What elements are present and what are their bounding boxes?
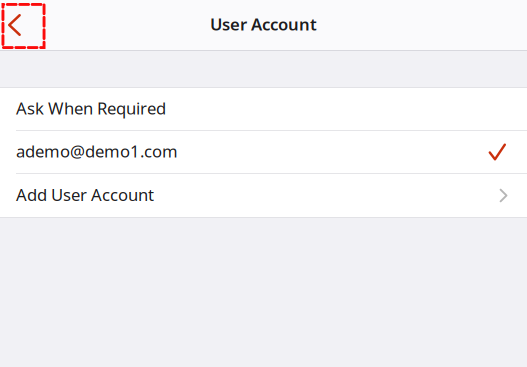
- button[interactable]: ademo@demo1.com: [0, 131, 527, 173]
- staticText: Add User Account: [16, 183, 154, 206]
- button[interactable]: Back: [1, 3, 45, 49]
- staticText: User Account: [210, 13, 317, 35]
- staticText: Ask When Required: [16, 97, 166, 119]
- staticText: ademo@demo1.com: [16, 140, 178, 162]
- button[interactable]: Ask When Required: [0, 88, 527, 130]
- button[interactable]: Add User Account: [0, 174, 527, 217]
